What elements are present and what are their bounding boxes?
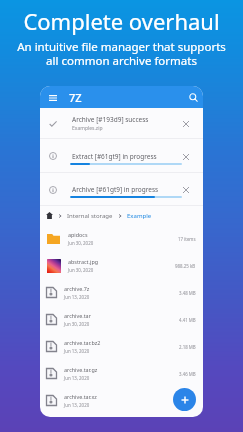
staticText: Archive [#193d9] success	[72, 115, 149, 124]
button[interactable]: archive.tar.gz	[46, 360, 196, 387]
staticText: archive.tar.gz	[64, 366, 98, 373]
staticText: Jun 13, 2020	[64, 348, 90, 354]
button[interactable]: Dismiss	[179, 150, 192, 163]
button[interactable]: archive.tar.xz	[46, 387, 196, 414]
staticText: Jun 13, 2020	[64, 294, 90, 300]
staticText: archive.tar.bz2	[64, 339, 101, 346]
button[interactable]: Archive [#61gt9] in progress	[40, 173, 203, 206]
staticText: 3.48 MB	[179, 290, 196, 296]
staticText: Jun 30, 2020	[64, 321, 90, 327]
staticText: apidocs	[68, 231, 88, 238]
staticText: archive.tar	[64, 312, 91, 319]
staticText: 3.46 MB	[179, 371, 196, 377]
staticText: archive.7z	[64, 285, 90, 292]
button[interactable]: Extract [#61gt9] in progress	[40, 139, 203, 173]
staticText: Archive [#61gt9] in progress	[72, 185, 159, 194]
staticText: Jun 30, 2020	[68, 267, 94, 273]
button[interactable]: Search	[187, 91, 200, 104]
button[interactable]: Archive [#193d9] success	[40, 108, 203, 139]
button[interactable]: Menu	[46, 91, 59, 104]
staticText: abstract.jpg	[68, 258, 99, 265]
staticText: 7Z	[69, 90, 82, 105]
staticText: 988.25 kB	[175, 263, 196, 269]
staticText: 2.18 MB	[179, 344, 196, 350]
staticText: Complete overhaul	[23, 6, 220, 36]
button[interactable]: archive.7z	[46, 279, 196, 306]
staticText: 4.41 MB	[179, 317, 196, 323]
staticText: Extract [#61gt9] in progress	[72, 152, 157, 161]
button[interactable]: abstract.jpg	[46, 252, 196, 279]
staticText: archive.tar.xz	[64, 393, 97, 400]
staticText: Example	[127, 212, 152, 220]
button[interactable]: archive.tar.bz2	[46, 333, 196, 360]
staticText: Examples.zip	[72, 125, 103, 132]
button[interactable]: Dismiss	[179, 117, 192, 130]
button[interactable]: apidocs	[46, 225, 196, 252]
staticText: 17 items	[178, 236, 196, 242]
button[interactable]: Internal storage	[46, 206, 197, 225]
staticText: Jun 13, 2020	[64, 402, 90, 408]
button[interactable]: Add	[173, 388, 196, 411]
staticText: An intuitive file manager that supports …	[17, 39, 226, 68]
staticText: Internal storage	[67, 212, 113, 220]
button[interactable]: Dismiss	[179, 183, 192, 196]
staticText: Jun 13, 2020	[64, 375, 90, 381]
button[interactable]: archive.tar	[46, 306, 196, 333]
staticText: Jun 30, 2020	[68, 240, 94, 246]
